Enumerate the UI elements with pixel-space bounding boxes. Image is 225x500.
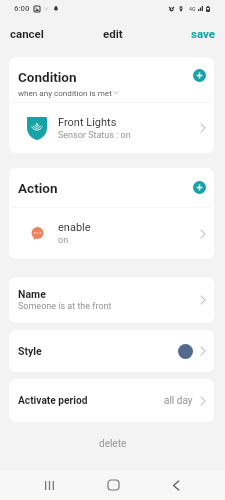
staticText: Someone is at the front <box>18 301 112 312</box>
staticText: delete <box>99 438 127 450</box>
staticText: when any condition is met <box>18 88 112 97</box>
button[interactable]: Add <box>193 69 206 82</box>
staticText: Sensor Status : on <box>58 130 131 141</box>
staticText: on <box>58 235 69 246</box>
staticText: 4G <box>189 6 196 12</box>
button[interactable]: Recents <box>37 472 61 498</box>
button[interactable]: Front Lights <box>9 103 214 153</box>
staticText: enable <box>58 221 91 234</box>
button[interactable]: Name <box>9 277 214 323</box>
button[interactable]: Style <box>9 330 214 372</box>
button[interactable]: delete <box>0 434 225 454</box>
button[interactable]: Activate period <box>9 379 214 422</box>
button[interactable]: cancel <box>0 22 50 45</box>
staticText: Name <box>18 288 46 300</box>
staticText: Condition <box>18 69 77 85</box>
staticText: cancel <box>10 27 44 40</box>
staticText: all day <box>164 395 193 407</box>
staticText: edit <box>103 27 123 40</box>
button[interactable]: Home <box>101 472 125 498</box>
button[interactable]: enable <box>9 208 214 259</box>
staticText: 6:00 <box>14 4 30 13</box>
staticText: Activate period <box>18 395 164 407</box>
staticText: Front Lights <box>58 116 117 129</box>
staticText: Style <box>18 345 178 357</box>
staticText: Action <box>18 180 58 196</box>
button[interactable]: Back <box>164 472 188 498</box>
button[interactable]: Add <box>193 181 206 194</box>
staticText: save <box>191 27 215 40</box>
button[interactable]: save <box>185 22 225 45</box>
